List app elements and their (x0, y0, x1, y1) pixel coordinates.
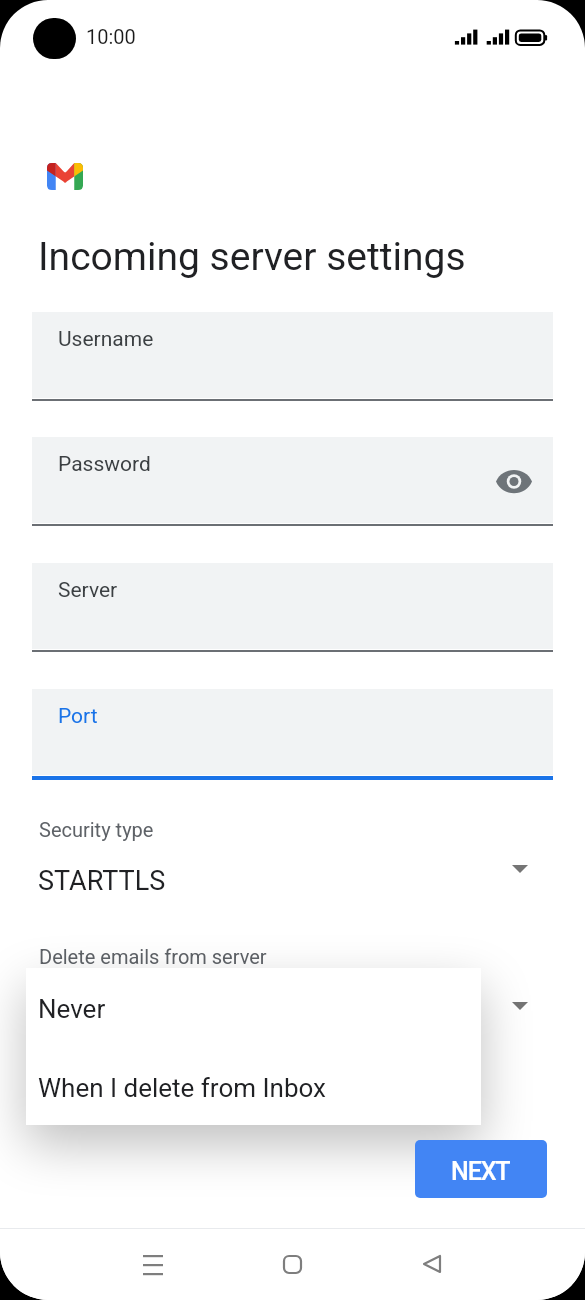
staticText: 10:00 (86, 25, 136, 48)
button[interactable]: Security type (0, 818, 585, 910)
button[interactable]: Username (32, 312, 553, 402)
staticText: Password (58, 452, 151, 477)
button[interactable]: Server (32, 563, 553, 653)
staticText: Server (58, 578, 118, 603)
staticText: STARTTLS (38, 865, 166, 897)
button[interactable]: Delete emails from server (0, 945, 585, 1037)
button[interactable]: Port (32, 689, 553, 779)
staticText: Incoming server settings (38, 234, 466, 280)
other: Show password (496, 469, 532, 494)
button[interactable]: Back (392, 1229, 472, 1300)
button[interactable]: NEXT (415, 1140, 547, 1198)
button[interactable]: Home (253, 1229, 333, 1300)
staticText: Username (58, 327, 154, 352)
staticText: When I delete from Inbox (38, 1073, 326, 1103)
button[interactable]: Never (26, 968, 481, 1046)
button[interactable]: Recents (113, 1229, 193, 1300)
staticText: Never (38, 994, 106, 1024)
staticText: NEXT (451, 1157, 510, 1186)
button[interactable]: Password (32, 437, 553, 527)
staticText: Never (38, 992, 108, 1024)
staticText: Port (58, 704, 98, 729)
button[interactable]: When I delete from Inbox (26, 1046, 481, 1125)
staticText: Delete emails from server (39, 945, 267, 968)
staticText: Security type (39, 818, 154, 841)
